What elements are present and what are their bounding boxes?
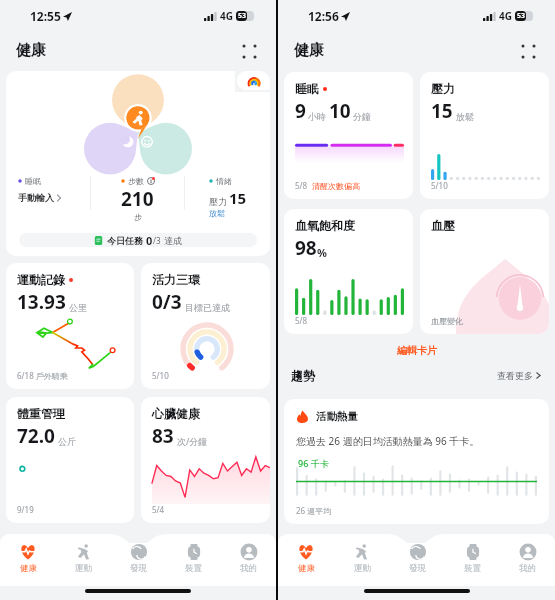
staticText: 步數 [128, 176, 144, 186]
staticText: 5/8 [295, 315, 308, 326]
staticText: 健康 [20, 563, 37, 574]
button[interactable]: 睡眠 [284, 72, 413, 199]
staticText: 步 [134, 212, 142, 222]
staticText: 6/18 戶外騎乘 [17, 370, 68, 381]
staticText: 睡眠 [295, 81, 319, 96]
staticText: 5/8 [295, 180, 308, 191]
staticText: 13.93 [17, 289, 66, 315]
staticText: 12:56 [308, 8, 339, 24]
button[interactable]: 情緒 [209, 176, 247, 218]
button[interactable]: 運動 [334, 543, 390, 586]
staticText: 放鬆 [456, 111, 474, 122]
staticText: 睡眠 [25, 176, 41, 186]
staticText: 210 [121, 186, 154, 212]
staticText: 分鐘 [353, 111, 371, 122]
staticText: 健康 [16, 41, 46, 60]
button[interactable]: 我的 [500, 543, 555, 586]
staticText: 血壓變化 [431, 316, 463, 326]
staticText: 查看更多 [497, 370, 533, 381]
button[interactable]: 今日任務 [19, 233, 257, 247]
staticText: 4G [499, 9, 512, 23]
staticText: 12:55 [30, 8, 61, 24]
staticText: 清醒次數偏高 [312, 181, 360, 191]
staticText: 壓力 [431, 81, 455, 96]
staticText: 5/10 [152, 370, 169, 381]
staticText: 小時 [308, 111, 326, 122]
staticText: 活動熱量 [316, 410, 358, 423]
staticText: 心臟健康 [152, 406, 200, 421]
staticText: 血壓 [431, 218, 455, 233]
staticText: 情緒 [216, 176, 232, 186]
button[interactable]: 活力三環 [141, 263, 270, 389]
staticText: 15 [431, 98, 453, 124]
staticText: 9/19 [17, 504, 34, 515]
button[interactable]: 運動記錄 [6, 263, 134, 389]
staticText: 裝置 [185, 563, 202, 574]
button[interactable]: 心臟健康 [141, 397, 270, 523]
button[interactable]: 裝置 [166, 543, 221, 586]
button[interactable]: 我的 [221, 543, 276, 586]
button[interactable]: 血氧飽和度 [284, 209, 413, 334]
staticText: 運動 [354, 563, 371, 574]
button[interactable]: 健康 [278, 543, 334, 586]
staticText: 編輯卡片 [397, 344, 437, 357]
staticText: 我的 [240, 563, 257, 574]
staticText: 運動 [75, 563, 92, 574]
staticText: 達成 [164, 235, 182, 246]
staticText: 98 [295, 235, 317, 261]
staticText: 健康 [294, 41, 324, 60]
staticText: 今日任務 [107, 235, 143, 246]
staticText: 活力三環 [152, 272, 200, 287]
staticText: 發現 [130, 563, 147, 574]
staticText: 我的 [519, 563, 536, 574]
button[interactable]: 發現 [390, 543, 445, 586]
button[interactable]: 健康 [0, 543, 56, 586]
staticText: 放鬆 [209, 208, 225, 218]
staticText: 5/10 [431, 180, 448, 191]
staticText: 9 [295, 98, 306, 124]
button[interactable]: More options [517, 40, 539, 62]
button[interactable]: 裝置 [445, 543, 500, 586]
button[interactable]: 查看更多 [497, 370, 542, 381]
staticText: 53 [517, 11, 526, 21]
staticText: 運動記錄 [17, 272, 65, 287]
button[interactable]: 活動熱量 [284, 399, 549, 524]
staticText: 26 週平均 [296, 505, 332, 516]
staticText: 壓力 [209, 196, 227, 207]
staticText: 0/3 [152, 289, 182, 315]
staticText: 15 [229, 188, 247, 208]
button[interactable]: 編輯卡片 [278, 344, 555, 357]
staticText: 0 [146, 233, 153, 247]
staticText: 發現 [409, 563, 426, 574]
button[interactable]: 壓力 [420, 72, 549, 199]
button[interactable]: Health score [237, 71, 270, 90]
button[interactable]: 步數 [91, 176, 184, 222]
staticText: 您過去 26 週的日均活動熱量為 96 千卡。 [296, 434, 480, 448]
button[interactable]: 發現 [111, 543, 166, 586]
staticText: 5/4 [152, 504, 165, 515]
staticText: 趨勢 [291, 368, 315, 383]
button[interactable]: 血壓 [420, 209, 549, 334]
button[interactable]: More options [238, 40, 260, 62]
button[interactable]: 睡眠 [18, 176, 90, 203]
staticText: 手動輸入 [18, 192, 54, 203]
staticText: 83 [152, 423, 174, 449]
staticText: 健康 [298, 563, 315, 574]
staticText: 公里 [69, 302, 87, 313]
staticText: 體重管理 [17, 406, 65, 421]
staticText: 53 [238, 11, 247, 21]
staticText: % [317, 245, 327, 260]
staticText: 目標已達成 [185, 302, 230, 313]
staticText: 10 [329, 98, 351, 124]
button[interactable]: 運動 [56, 543, 111, 586]
button[interactable]: 體重管理 [6, 397, 134, 523]
staticText: 公斤 [58, 436, 76, 447]
staticText: 72.0 [17, 423, 55, 449]
staticText: 裝置 [464, 563, 481, 574]
staticText: 次/分鐘 [177, 435, 208, 447]
staticText: 4G [220, 9, 233, 23]
staticText: 血氧飽和度 [295, 218, 355, 233]
staticText: 96 千卡 [298, 457, 329, 469]
staticText: /3 [153, 235, 161, 246]
